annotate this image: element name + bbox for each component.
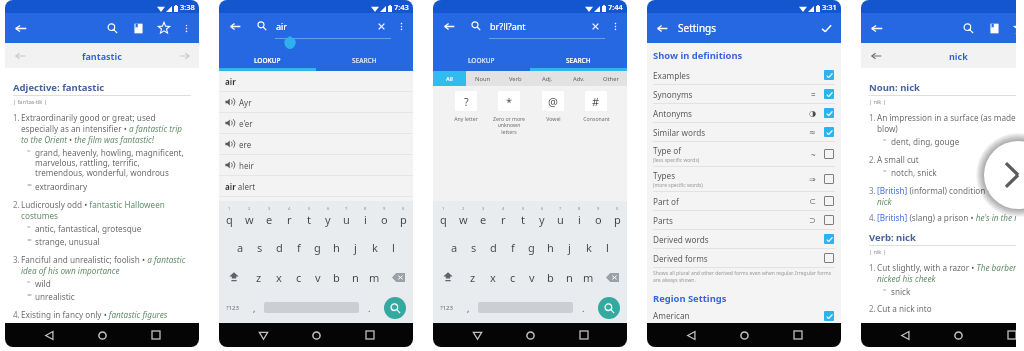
button[interactable]: Part of bbox=[653, 192, 835, 210]
button[interactable]: SEARCH bbox=[316, 52, 413, 68]
button[interactable]: Done bbox=[818, 20, 834, 36]
button[interactable]: 0 bbox=[394, 201, 413, 232]
button[interactable]: . bbox=[575, 292, 591, 323]
button[interactable]: f bbox=[503, 232, 522, 262]
button[interactable]: LOOKUP bbox=[219, 52, 316, 68]
button[interactable]: All bbox=[433, 71, 466, 86]
button[interactable]: Back bbox=[467, 325, 487, 345]
button[interactable]: Backspace bbox=[598, 262, 627, 292]
button[interactable]: h bbox=[327, 232, 346, 262]
button[interactable]: Shift bbox=[433, 262, 463, 292]
button[interactable]: g bbox=[308, 232, 327, 262]
button[interactable]: d bbox=[484, 232, 503, 262]
button[interactable]: n bbox=[346, 262, 365, 292]
button[interactable]: b bbox=[327, 262, 346, 292]
button[interactable]: Similar words bbox=[653, 123, 835, 141]
button[interactable]: b bbox=[541, 262, 560, 292]
button[interactable]: Antonyms bbox=[653, 104, 835, 122]
button[interactable]: Recent apps bbox=[788, 325, 808, 345]
button[interactable]: s bbox=[464, 232, 484, 262]
button[interactable]: 9 bbox=[589, 201, 608, 232]
button[interactable]: Recent apps bbox=[146, 325, 166, 345]
button[interactable]: Types bbox=[653, 167, 835, 191]
button[interactable]: More options bbox=[178, 20, 194, 36]
button[interactable]: 6 bbox=[318, 201, 337, 232]
button[interactable]: m bbox=[365, 262, 384, 292]
button[interactable]: a bbox=[230, 232, 250, 262]
button[interactable]: Verb bbox=[499, 71, 531, 86]
button[interactable]: Examples bbox=[653, 66, 835, 84]
button[interactable]: . bbox=[361, 292, 377, 323]
button[interactable]: Next word bbox=[176, 48, 192, 64]
button[interactable]: Back bbox=[253, 325, 273, 345]
button[interactable]: More options bbox=[609, 20, 621, 32]
button[interactable]: Search bbox=[598, 297, 620, 319]
button[interactable]: k bbox=[579, 232, 598, 262]
button[interactable]: More options bbox=[395, 20, 407, 32]
button[interactable]: a bbox=[444, 232, 464, 262]
button[interactable]: Back bbox=[681, 325, 701, 345]
button[interactable]: k bbox=[365, 232, 384, 262]
button[interactable]: Next screenshot bbox=[978, 135, 1024, 215]
button[interactable]: Back bbox=[441, 18, 457, 34]
button[interactable]: Previous word bbox=[12, 48, 28, 64]
button[interactable]: Adv. bbox=[563, 71, 595, 86]
button[interactable]: v bbox=[522, 262, 541, 292]
button[interactable]: g bbox=[522, 232, 541, 262]
button[interactable]: ?123 bbox=[433, 292, 460, 323]
button[interactable]: Other bbox=[595, 71, 627, 86]
button[interactable]: SEARCH bbox=[530, 52, 627, 68]
button[interactable]: n bbox=[560, 262, 579, 292]
button[interactable]: Back bbox=[227, 18, 243, 34]
button[interactable]: e'er bbox=[219, 113, 413, 133]
button[interactable]: j bbox=[560, 232, 579, 262]
button[interactable]: American bbox=[653, 308, 835, 323]
button[interactable]: 0 bbox=[608, 201, 627, 232]
button[interactable]: LOOKUP bbox=[433, 52, 530, 68]
button[interactable]: 7 bbox=[551, 201, 570, 232]
button[interactable]: Derived forms bbox=[653, 249, 835, 267]
button[interactable]: v bbox=[308, 262, 327, 292]
button[interactable]: c bbox=[503, 262, 522, 292]
button[interactable]: * bbox=[498, 91, 520, 111]
button[interactable]: z bbox=[249, 262, 269, 292]
button[interactable]: Back bbox=[895, 325, 915, 345]
button[interactable]: z bbox=[463, 262, 483, 292]
button[interactable]: Ayr bbox=[219, 92, 413, 112]
button[interactable]: Add to favorites bbox=[1011, 19, 1024, 37]
button[interactable]: Home bbox=[92, 325, 112, 345]
button[interactable]: Previous word bbox=[868, 48, 884, 64]
button[interactable]: 1 bbox=[433, 201, 453, 232]
button[interactable]: 2 bbox=[453, 201, 473, 232]
button[interactable]: Search bbox=[103, 19, 121, 37]
button[interactable]: h bbox=[541, 232, 560, 262]
button[interactable]: Recent apps bbox=[574, 325, 594, 345]
button[interactable]: ?123 bbox=[219, 292, 246, 323]
button[interactable]: 9 bbox=[375, 201, 394, 232]
button[interactable]: 4 bbox=[279, 201, 299, 232]
button[interactable]: @ bbox=[542, 91, 564, 111]
button[interactable]: Home bbox=[948, 325, 968, 345]
button[interactable]: Bookmarks bbox=[985, 19, 1003, 37]
button[interactable]: Add to favorites bbox=[155, 19, 173, 37]
button[interactable]: m bbox=[579, 262, 598, 292]
button[interactable]: 8 bbox=[356, 201, 375, 232]
button[interactable]: Search bbox=[384, 297, 406, 319]
button[interactable]: Home bbox=[734, 325, 754, 345]
button[interactable]: Adj. bbox=[531, 71, 563, 86]
button[interactable]: f bbox=[289, 232, 308, 262]
button[interactable]: Back bbox=[39, 325, 59, 345]
button[interactable]: air alert bbox=[219, 176, 413, 196]
button[interactable]: 3 bbox=[259, 201, 279, 232]
button[interactable]: 6 bbox=[532, 201, 551, 232]
button[interactable]: Derived words bbox=[653, 230, 835, 248]
button[interactable]: Back bbox=[868, 19, 886, 37]
button[interactable]: Clear query bbox=[374, 19, 388, 33]
button[interactable]: Recent apps bbox=[360, 325, 380, 345]
button[interactable]: Back bbox=[654, 20, 670, 36]
button[interactable]: , bbox=[460, 292, 476, 323]
button[interactable]: c bbox=[289, 262, 308, 292]
button[interactable]: l bbox=[384, 232, 403, 262]
button[interactable]: 1 bbox=[219, 201, 239, 232]
